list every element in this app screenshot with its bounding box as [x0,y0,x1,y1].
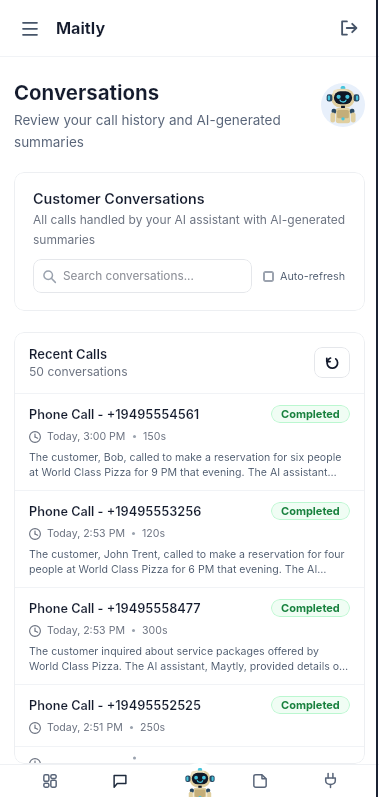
staticText: Phone Call - +19495552525 [29,698,271,713]
staticText: Auto-refresh [280,270,346,283]
staticText: Completed [281,698,340,711]
staticText: Today, 3:00 PM [47,430,126,443]
staticText: Maitly [56,18,106,38]
button[interactable]: Assistant [174,763,225,797]
staticText: The customer, John Trent, called to make… [29,548,350,575]
button[interactable]: Search conversations... [33,259,252,293]
staticText: Completed [281,601,340,614]
staticText: The customer inquired about service pack… [29,645,350,672]
staticText: Completed [281,504,340,517]
staticText: Today, 2:53 PM [47,624,125,637]
button[interactable]: Phone Call - +19495554561 [14,394,365,490]
staticText: Customer Conversations [33,190,205,207]
button[interactable]: Messages [85,764,155,797]
staticText: The customer, Bob, called to make a rese… [29,451,350,478]
staticText: 300s [142,624,168,637]
staticText: Today, 2:51 PM [47,721,123,734]
staticText: Phone Call - +19495558477 [29,601,271,616]
staticText: Today, 2:53 PM [47,527,125,540]
button[interactable]: Documents [225,764,295,797]
button[interactable]: Menu [15,13,45,43]
button[interactable]: Phone Call - +19495558477 [14,588,365,684]
staticText: 250s [140,721,166,734]
button[interactable]: Refresh [314,347,350,378]
button[interactable]: Integrations [295,764,365,797]
staticText: Recent Calls [29,346,108,362]
button[interactable]: Dashboard [14,764,85,797]
staticText: Phone Call - +19495553256 [29,504,271,519]
button[interactable]: Auto-refresh [263,270,346,283]
staticText: Phone Call - +19495554561 [29,407,271,422]
button[interactable]: Phone Call - +19495553256 [14,491,365,587]
button[interactable]: Log out [334,13,364,43]
staticText: All calls handled by your AI assistant w… [33,212,346,247]
staticText: 50 conversations [29,364,128,379]
button[interactable]: Phone Call - +19495552525 [14,685,365,746]
staticText: Search conversations... [63,269,194,283]
staticText: 120s [142,527,166,540]
staticText: Completed [281,407,340,420]
staticText: Conversations [14,80,160,105]
staticText: Review your call history and AI-generate… [14,112,311,150]
button[interactable]: Phone Call - +19495551199 [14,747,365,764]
staticText: 150s [143,430,167,443]
